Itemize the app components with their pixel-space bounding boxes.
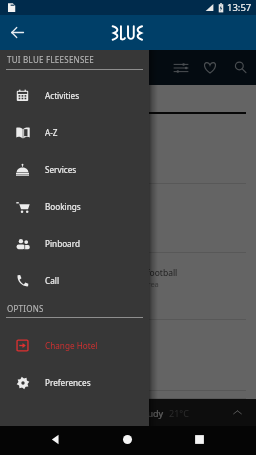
button[interactable]: Change Hotel [0,327,149,364]
staticText: 21°C [169,407,189,419]
staticText: beach area [120,279,159,289]
staticText: Preferences [45,377,91,388]
button[interactable]: Home [114,426,141,453]
staticText: Change Hotel [45,340,98,351]
button[interactable]: Activities [0,77,149,114]
staticText: 13:57 [227,1,252,14]
button[interactable]: Cloudy [0,399,256,426]
staticText: Bookings [45,201,81,212]
staticText: Beach football [120,267,178,279]
button[interactable]: Favourites [194,52,225,83]
staticText: Cloudy [134,407,164,419]
button[interactable]: Back [42,426,69,453]
button[interactable]: A-Z [0,114,149,151]
staticText: Call [45,275,59,286]
button[interactable]: Beach football [0,253,256,320]
staticText: Services [45,164,77,175]
button[interactable]: Bookings [0,188,149,225]
button[interactable]: Back [0,15,35,50]
button[interactable]: Gym [0,114,256,184]
button[interactable]: Pool [0,391,256,399]
button[interactable]: Pinboard [0,225,149,262]
button[interactable]: Darts [0,320,256,391]
button[interactable]: Services [0,151,149,188]
button[interactable]: Filter [165,52,196,83]
button[interactable]: Search [225,52,256,83]
staticText: Pinboard [45,238,80,249]
staticText: A-Z [45,127,58,138]
button[interactable]: Call [0,262,149,299]
button[interactable]: Preferences [0,364,149,401]
button[interactable]: Recent apps [186,426,213,453]
staticText: OPTIONS [7,303,44,314]
button[interactable]: Yoga [0,184,256,253]
staticText: Activities [45,90,80,101]
staticText: TUI BLUE FLEESENSEE [7,54,94,65]
